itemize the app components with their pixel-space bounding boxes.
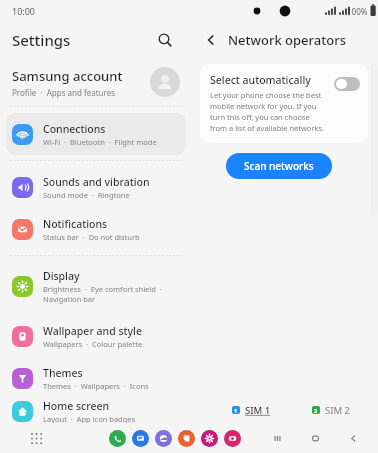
button[interactable]: Phone (109, 430, 126, 447)
button[interactable] (334, 77, 360, 91)
staticText: Scan networks (244, 159, 314, 173)
staticText: SIM 2 (325, 404, 350, 417)
staticText: Wallpapers · Colour palette (43, 339, 143, 349)
button[interactable]: Home screen (6, 399, 186, 423)
button[interactable]: Select automatically (200, 64, 368, 143)
staticText: Layout · App icon badges (43, 414, 136, 423)
button[interactable]: Display (6, 261, 186, 311)
staticText: Profile · Apps and features (12, 87, 116, 98)
button[interactable]: Camera (224, 430, 241, 447)
staticText: Wi-Fi · Bluetooth · Flight mode (43, 137, 157, 147)
button[interactable]: Settings (201, 430, 218, 447)
staticText: Wallpaper and style (43, 324, 142, 338)
staticText: Display (43, 269, 80, 283)
staticText: Sounds and vibration (43, 175, 150, 189)
button[interactable]: Wallpaper and style (6, 315, 186, 357)
button[interactable]: Galaxy Store (178, 430, 195, 447)
button[interactable]: Back (200, 29, 222, 51)
button[interactable]: Connections (6, 113, 186, 155)
staticText: Samsung account (12, 67, 123, 85)
staticText: Themes · Wallpapers · Icons (43, 381, 149, 391)
staticText: 100% (347, 6, 368, 17)
staticText: Settings (12, 30, 71, 50)
staticText: Network operators (228, 31, 346, 49)
button[interactable]: Scan networks (226, 153, 332, 179)
button[interactable]: Back (344, 429, 362, 447)
staticText: Sound mode · Ringtone (43, 190, 130, 200)
button[interactable]: Home (306, 429, 324, 447)
staticText: Navigation bar (43, 294, 96, 304)
staticText: 10:00 (12, 5, 36, 17)
button[interactable]: 2 (291, 397, 370, 423)
staticText: Let your phone choose the best mobile ne… (210, 90, 328, 133)
staticText: Select automatically (210, 73, 311, 87)
button[interactable]: Search (152, 27, 178, 53)
button[interactable]: Recents (268, 429, 286, 447)
button[interactable]: Internet (155, 430, 172, 447)
staticText: Home screen (43, 399, 110, 413)
button[interactable]: Notifications (6, 208, 186, 250)
staticText: Connections (43, 122, 106, 136)
staticText: SIM 1 (245, 404, 271, 417)
button[interactable]: 1 (212, 397, 291, 423)
staticText: 1 (234, 407, 238, 414)
staticText: 2 (314, 407, 318, 414)
button[interactable]: Samsung account (0, 58, 192, 106)
staticText: Notifications (43, 217, 108, 231)
staticText: Status bar · Do not disturb (43, 232, 140, 242)
button[interactable]: Messages (132, 430, 149, 447)
button[interactable]: Themes (6, 357, 186, 399)
button[interactable]: Apps (26, 428, 46, 448)
staticText: Themes (43, 366, 83, 380)
button[interactable]: Sounds and vibration (6, 166, 186, 208)
staticText: Brightness · Eye comfort shield · (43, 284, 162, 294)
